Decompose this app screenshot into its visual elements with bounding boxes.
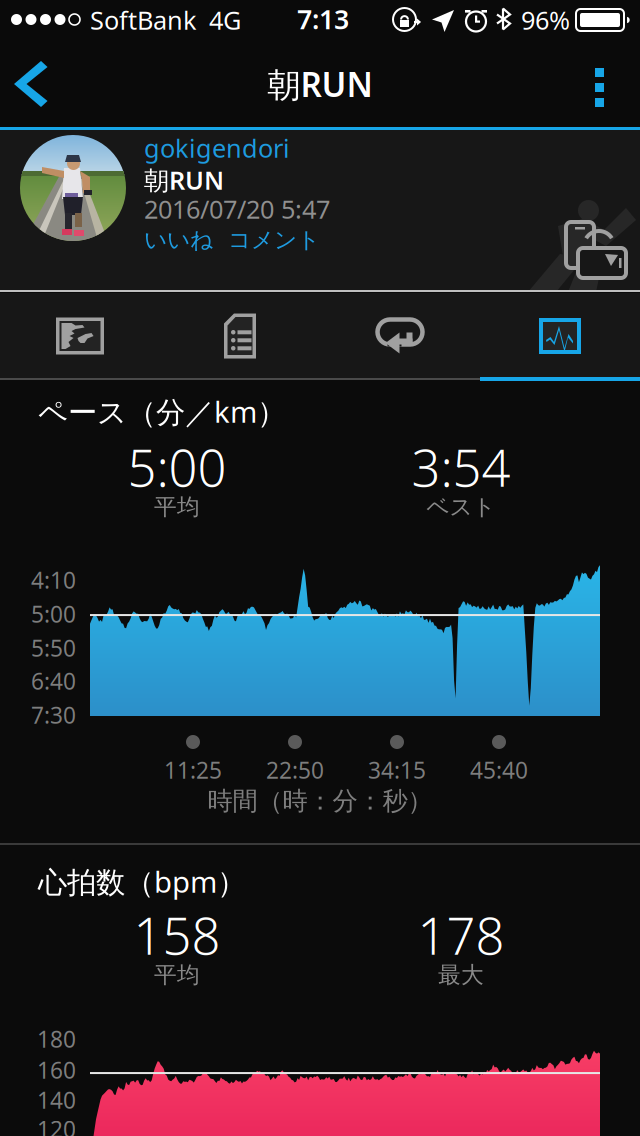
staticText: 朝RUN	[144, 163, 224, 197]
staticText: 平均	[154, 961, 200, 989]
button[interactable]: コメント	[228, 222, 320, 258]
staticText: 180	[37, 1024, 76, 1054]
button[interactable]: Laps	[320, 293, 480, 379]
staticText: 6:40	[31, 666, 76, 696]
staticText: 5:50	[31, 633, 76, 663]
staticText: 5:00	[127, 433, 226, 501]
staticText: 7:13	[297, 1, 349, 37]
staticText: 5:00	[31, 599, 76, 629]
staticText: 最大	[438, 961, 484, 989]
staticText: いいね	[144, 226, 213, 254]
staticText: 7:30	[31, 700, 76, 730]
staticText: 11:25	[164, 755, 222, 785]
staticText: 22:50	[266, 755, 324, 785]
staticText: ベスト	[426, 493, 495, 521]
staticText: 平均	[154, 493, 200, 521]
staticText: 45:40	[470, 755, 528, 785]
staticText: 34:15	[368, 755, 426, 785]
button[interactable]: Graphs	[480, 293, 640, 379]
staticText: ペース（分／km）	[38, 392, 286, 431]
staticText: 3:54	[411, 433, 510, 501]
staticText: 96%	[521, 3, 570, 37]
staticText: 2016/07/20 5:47	[144, 192, 330, 226]
staticText: gokigendori	[144, 131, 290, 165]
staticText: 140	[37, 1085, 76, 1115]
button[interactable]: いいね	[144, 222, 213, 258]
staticText: SoftBank	[90, 3, 197, 37]
button[interactable]: Back	[0, 40, 88, 128]
staticText: 120	[37, 1114, 76, 1136]
staticText: 160	[37, 1055, 76, 1085]
staticText: 158	[133, 901, 220, 969]
staticText: 4:10	[31, 565, 76, 595]
staticText: 178	[417, 901, 504, 969]
staticText: コメント	[228, 226, 320, 254]
button[interactable]: Details	[160, 293, 320, 379]
staticText: 心拍数（bpm）	[38, 862, 246, 901]
button[interactable]: More options	[560, 40, 640, 128]
staticText: 4G	[209, 3, 241, 37]
staticText: 時間（時：分：秒）	[207, 785, 432, 816]
button[interactable]: Map	[0, 293, 160, 379]
staticText: 朝RUN	[267, 62, 372, 106]
button[interactable]: Rotate screen	[558, 214, 640, 286]
